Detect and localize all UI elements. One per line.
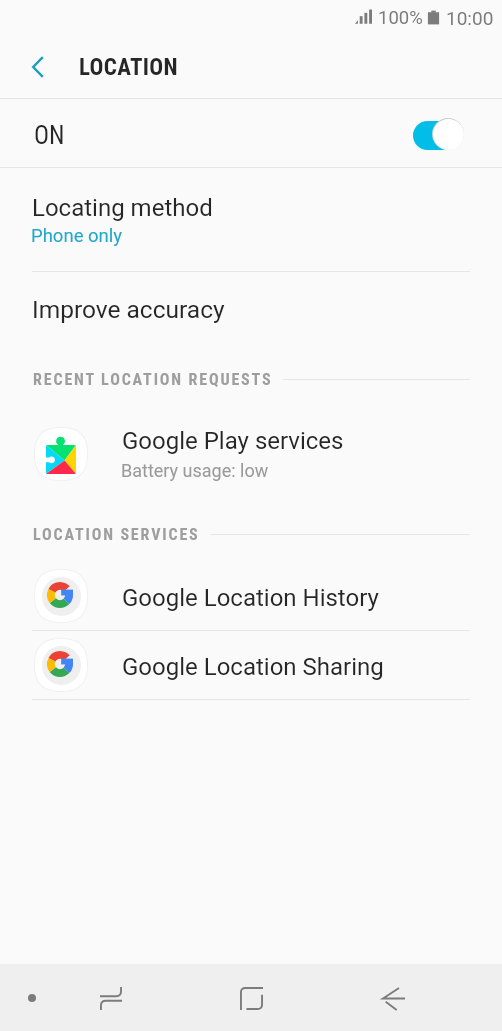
button[interactable]: Locating method [0,180,502,260]
staticText: LOCATION SERVICES [33,525,200,544]
button[interactable]: Navigate up [16,45,60,89]
button[interactable]: ON [0,99,502,167]
staticText: LOCATION [79,54,178,81]
button[interactable]: Improve accuracy [0,280,502,340]
button[interactable]: Google Location Sharing [0,636,502,698]
staticText: RECENT LOCATION REQUESTS [33,370,273,389]
staticText: 10:00 [446,7,494,29]
staticText: 100% [378,7,423,29]
button[interactable]: Home [227,974,275,1022]
staticText: Google Play services [122,427,344,455]
button[interactable]: Google Play services [0,427,502,487]
button[interactable]: Menu [8,974,56,1022]
staticText: ON [34,121,65,150]
staticText: Locating method [32,194,213,222]
button[interactable]: Back [369,974,417,1022]
staticText: Google Location Sharing [122,653,384,681]
staticText: Improve accuracy [32,295,225,324]
button[interactable]: Google Location History [0,567,502,629]
button[interactable]: Recent apps [87,974,135,1022]
staticText: Phone only [31,225,123,247]
staticText: Battery usage: low [121,460,269,481]
staticText: Google Location History [122,584,379,612]
